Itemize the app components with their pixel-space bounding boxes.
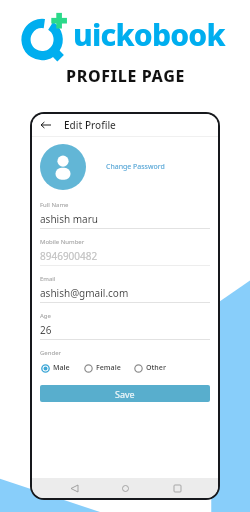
staticText: 8946900482	[40, 249, 98, 263]
staticText: ashish@gmail.com	[40, 286, 129, 300]
staticText: Female	[96, 363, 121, 373]
button[interactable]: Recent apps	[167, 478, 187, 498]
staticText: Male	[53, 363, 70, 373]
staticText: Edit Profile	[64, 118, 116, 132]
button[interactable]: Mobile Number	[40, 238, 210, 266]
staticText: Change Password	[106, 162, 165, 172]
button[interactable]: Back	[38, 117, 54, 133]
button[interactable]: Male	[40, 362, 71, 374]
staticText: 26	[40, 323, 52, 337]
staticText: uickobook	[73, 14, 225, 55]
staticText: Mobile Number	[40, 238, 85, 246]
button[interactable]: Profile photo	[40, 144, 86, 190]
staticText: Save	[115, 388, 135, 400]
button[interactable]: Female	[83, 362, 122, 374]
staticText: Full Name	[40, 201, 69, 209]
button[interactable]: Back	[64, 478, 84, 498]
button[interactable]: Age	[40, 312, 210, 340]
staticText: PROFILE PAGE	[66, 65, 185, 87]
staticText: Age	[40, 312, 51, 320]
button[interactable]: Full Name	[40, 201, 210, 229]
button[interactable]: Home	[115, 478, 135, 498]
button[interactable]: Change Password	[104, 160, 167, 174]
staticText: Gender	[40, 349, 62, 357]
button[interactable]: Save	[40, 385, 210, 402]
staticText: ashish maru	[40, 212, 98, 226]
staticText: Other	[146, 363, 166, 373]
button[interactable]: Other	[133, 362, 167, 374]
button[interactable]: Email	[40, 275, 210, 303]
staticText: Email	[40, 275, 56, 283]
